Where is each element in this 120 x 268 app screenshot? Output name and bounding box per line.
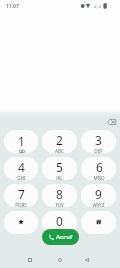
staticText: 2 (56, 132, 63, 148)
staticText: TUV (55, 202, 64, 207)
staticText: 11:07 (6, 3, 19, 10)
button[interactable]: 1 (4, 130, 38, 153)
button[interactable]: Back (81, 254, 93, 266)
button[interactable]: 8 (42, 184, 77, 207)
staticText: 0 (56, 213, 63, 229)
staticText: MNO (93, 175, 105, 180)
button[interactable]: Home (54, 254, 66, 266)
staticText: 9 (95, 186, 102, 202)
button[interactable]: 3 (81, 130, 116, 153)
staticText: 4 (18, 159, 25, 175)
staticText: 1 (18, 133, 25, 149)
button[interactable]: 0 (42, 211, 77, 234)
button[interactable] (81, 211, 116, 234)
button[interactable] (4, 211, 38, 234)
staticText: 6 (96, 159, 103, 175)
staticText: ABC (55, 148, 64, 153)
staticText: WXYZ (92, 202, 105, 207)
staticText: 5 (56, 159, 63, 175)
button[interactable]: 2 (42, 130, 77, 153)
button[interactable]: Recents (24, 254, 36, 266)
button[interactable]: 5 (42, 157, 77, 180)
staticText: DEF (94, 148, 103, 153)
staticText: 7 (18, 186, 25, 202)
button[interactable]: 6 (81, 157, 116, 180)
staticText: Anruf (56, 233, 73, 241)
button[interactable]: 7 (4, 184, 38, 207)
button[interactable]: 4 (4, 157, 38, 180)
button[interactable]: 9 (81, 184, 116, 207)
button[interactable]: Backspace (104, 114, 119, 129)
staticText: PQRS (15, 202, 27, 207)
staticText: 8 (56, 186, 63, 202)
staticText: GHI (17, 175, 26, 180)
staticText: JKL (56, 175, 63, 180)
staticText: 3 (95, 132, 102, 148)
button[interactable]: Anruf (42, 229, 79, 245)
